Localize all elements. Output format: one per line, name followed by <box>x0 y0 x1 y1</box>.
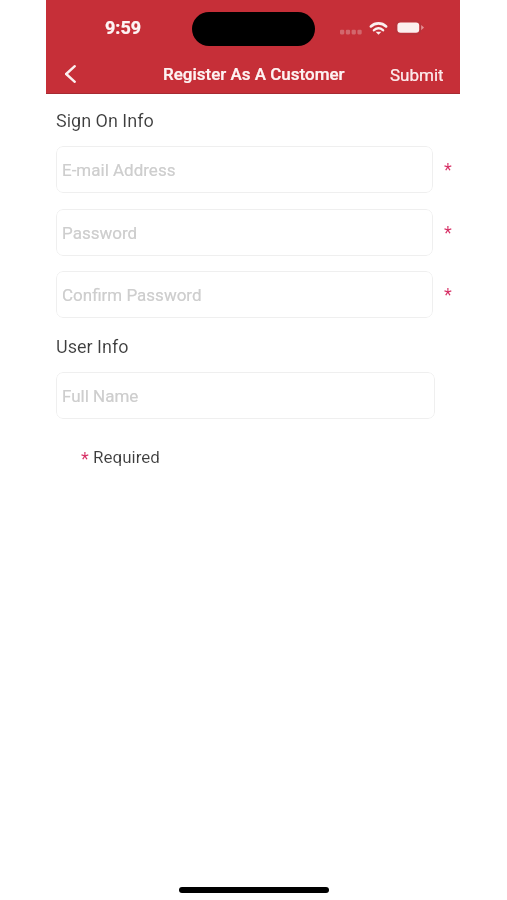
staticText: Submit <box>390 65 444 85</box>
staticText: 9:59 <box>105 17 142 38</box>
staticText: * <box>444 222 452 243</box>
button[interactable]: Full Name <box>56 372 435 419</box>
staticText: Register As A Customer <box>163 64 345 84</box>
button[interactable]: Password <box>56 209 433 256</box>
staticText: E-mail Address <box>62 160 176 180</box>
staticText: * <box>444 159 452 180</box>
staticText: Required <box>93 447 160 467</box>
staticText: Full Name <box>62 386 139 406</box>
button[interactable]: E-mail Address <box>56 146 433 193</box>
button[interactable]: Submit <box>378 58 456 92</box>
staticText: User Info <box>56 336 129 357</box>
staticText: * <box>81 448 89 469</box>
staticText: * <box>444 284 452 305</box>
staticText: Sign On Info <box>56 110 154 131</box>
button[interactable]: Confirm Password <box>56 271 433 318</box>
button[interactable]: Back <box>51 55 89 93</box>
staticText: Confirm Password <box>62 285 202 305</box>
staticText: Password <box>62 223 138 243</box>
